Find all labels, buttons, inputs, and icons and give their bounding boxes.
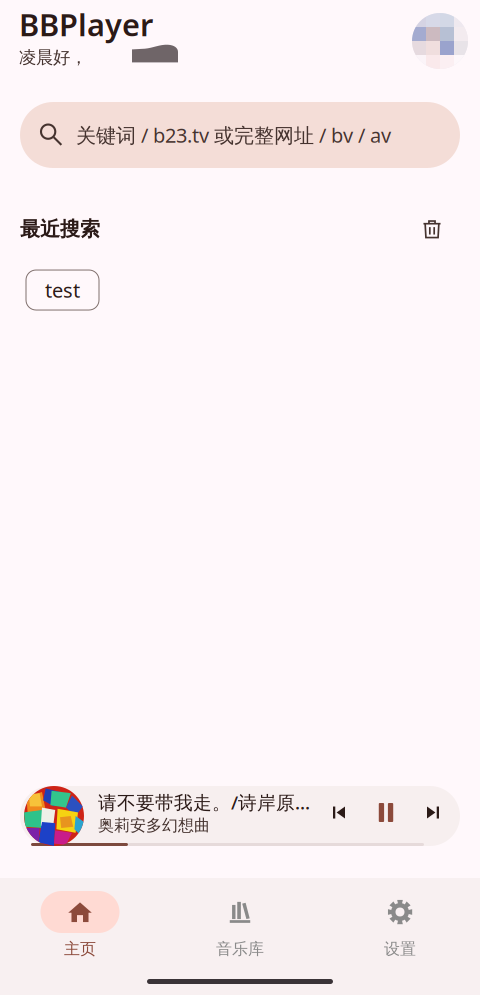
button[interactable]: 主页	[0, 891, 160, 959]
button[interactable]: 音乐库	[160, 891, 320, 959]
button[interactable]: Next track	[420, 799, 446, 825]
staticText: 凌晨好，	[19, 47, 87, 68]
button[interactable]: Pause	[372, 798, 400, 826]
button[interactable]: test	[26, 270, 99, 310]
staticText: 主页	[64, 939, 96, 959]
staticText: 音乐库	[216, 939, 264, 959]
button[interactable]: Previous track	[326, 799, 352, 825]
staticText: 请不要带我走。/诗岸原…	[98, 790, 310, 815]
button[interactable]: Profile	[412, 4, 468, 60]
button[interactable]: 关键词 / b23.tv 或完整网址 / bv / av	[20, 102, 460, 168]
staticText: 奥莉安多幻想曲	[98, 816, 210, 835]
staticText: 设置	[384, 939, 416, 959]
staticText: BBPlayer	[19, 4, 153, 45]
staticText: 关键词 / b23.tv 或完整网址 / bv / av	[76, 122, 391, 148]
button[interactable]: 设置	[320, 891, 480, 959]
button[interactable]: Clear recent searches	[416, 213, 448, 245]
staticText: 最近搜索	[20, 217, 100, 241]
staticText: test	[45, 277, 80, 303]
